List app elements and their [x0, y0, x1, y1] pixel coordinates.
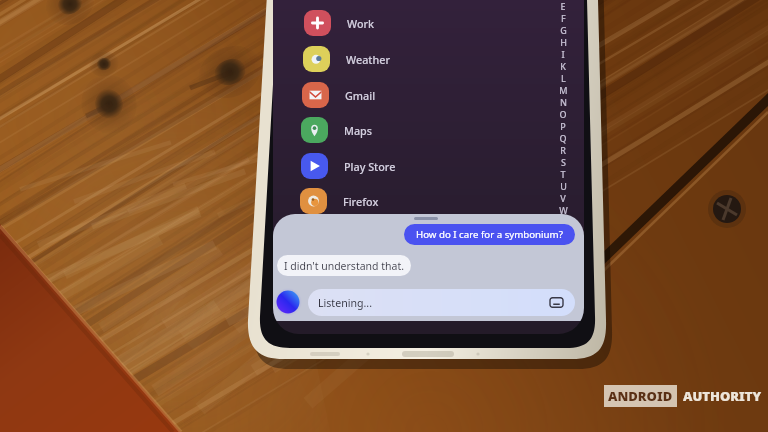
staticText: AUTHORITY — [683, 387, 762, 405]
staticText: I — [561, 48, 565, 60]
button[interactable]: Alphabet index — [556, 0, 570, 228]
staticText: Maps — [344, 123, 373, 138]
staticText: H — [560, 36, 567, 48]
staticText: T — [560, 168, 566, 180]
staticText: ANDROID — [608, 387, 673, 405]
button[interactable]: Gmail — [302, 82, 467, 108]
button[interactable]: Play Store — [301, 153, 466, 179]
button[interactable]: How do I care for a symbonium? — [404, 224, 575, 245]
staticText: L — [561, 72, 566, 84]
staticText: Q — [559, 132, 567, 144]
staticText: S — [561, 156, 566, 168]
staticText: E — [560, 0, 566, 12]
button[interactable]: Listening... — [308, 289, 575, 316]
staticText: V — [560, 192, 566, 204]
button[interactable]: News — [299, 224, 464, 250]
staticText: Weather — [346, 52, 390, 67]
staticText: K — [560, 60, 566, 72]
button[interactable]: Maps — [301, 117, 466, 143]
other: Assistant — [274, 288, 302, 316]
button[interactable]: I didn't understand that. — [277, 255, 411, 276]
other: Keyboard — [550, 296, 563, 309]
staticText: M — [559, 84, 568, 96]
staticText: Firefox — [343, 194, 379, 209]
staticText: R — [560, 144, 566, 156]
staticText: P — [560, 120, 566, 132]
staticText: Listening... — [318, 296, 373, 310]
staticText: U — [560, 180, 567, 192]
staticText: N — [560, 96, 567, 108]
button[interactable]: Weather — [303, 46, 468, 72]
staticText: How do I care for a symbonium? — [416, 228, 563, 241]
button[interactable]: Firefox — [300, 188, 465, 214]
staticText: O — [559, 108, 567, 120]
staticText: G — [560, 24, 567, 36]
staticText: X — [560, 216, 566, 228]
staticText: F — [561, 12, 566, 24]
staticText: Gmail — [345, 88, 376, 103]
staticText: Work — [347, 16, 375, 31]
staticText: W — [559, 204, 568, 216]
staticText: Play Store — [344, 159, 396, 174]
staticText: I didn't understand that. — [284, 259, 405, 273]
button[interactable]: Work — [304, 10, 469, 36]
